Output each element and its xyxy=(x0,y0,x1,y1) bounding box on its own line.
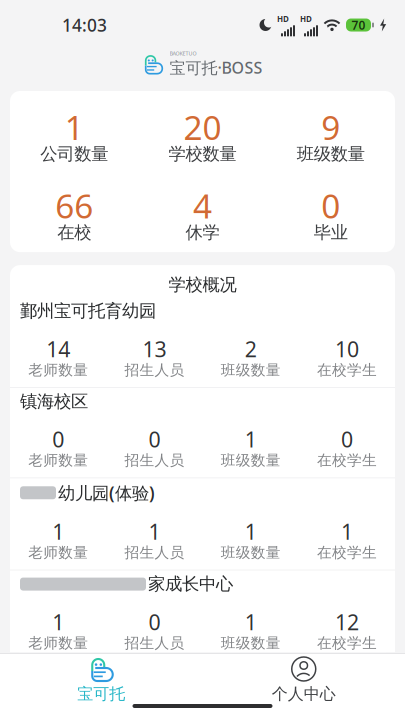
staticText: 宝可托 xyxy=(77,684,125,704)
staticText: 13 xyxy=(142,335,166,363)
staticText: 个人中心 xyxy=(272,684,336,704)
staticText: 班级数量 xyxy=(221,634,281,652)
staticText: 家成长中心 xyxy=(148,573,233,595)
button[interactable]: 镇海校区 xyxy=(10,388,395,478)
staticText: 1 xyxy=(52,517,64,546)
staticText: HD xyxy=(300,14,312,24)
staticText: 12 xyxy=(335,608,359,636)
staticText: HD xyxy=(277,14,289,24)
button[interactable]: 个人中心 xyxy=(202,656,405,704)
staticText: 1 xyxy=(341,517,353,546)
button[interactable]: 鄞州宝可托育幼园 xyxy=(10,297,395,388)
staticText: 老师数量 xyxy=(28,361,88,379)
staticText: 学校数量 xyxy=(168,143,236,165)
staticText: 2 xyxy=(245,335,257,363)
staticText: 14 xyxy=(46,335,70,363)
staticText: 班级数量 xyxy=(221,451,281,469)
staticText: 1 xyxy=(65,105,84,149)
staticText: 在校学生 xyxy=(317,451,377,469)
staticText: 20 xyxy=(183,105,221,149)
staticText: 在校学生 xyxy=(317,634,377,652)
button[interactable]: 幼儿园(体验) xyxy=(10,478,395,570)
staticText: 10 xyxy=(335,335,359,363)
staticText: BAOKETUO xyxy=(169,50,196,57)
button[interactable]: 宝可托 xyxy=(0,656,202,704)
staticText: 1 xyxy=(245,517,257,546)
staticText: 班级数量 xyxy=(297,143,365,165)
staticText: 0 xyxy=(148,608,160,636)
staticText: 1 xyxy=(148,517,160,546)
staticText: 在校学生 xyxy=(317,361,377,379)
staticText: 1 xyxy=(52,608,64,636)
staticText: 公司数量 xyxy=(40,143,108,165)
staticText: 招生人员 xyxy=(124,634,184,652)
staticText: 在校学生 xyxy=(317,544,377,562)
staticText: 老师数量 xyxy=(28,634,88,652)
staticText: 班级数量 xyxy=(221,361,281,379)
staticText: 招生人员 xyxy=(124,544,184,562)
button[interactable]: 家成长中心 xyxy=(10,570,395,661)
staticText: 66 xyxy=(55,184,93,228)
staticText: 招生人员 xyxy=(124,361,184,379)
staticText: 毕业 xyxy=(314,222,348,243)
staticText: 鄞州宝可托育幼园 xyxy=(20,300,156,322)
staticText: 在校 xyxy=(57,222,91,243)
staticText: 0 xyxy=(321,184,340,228)
staticText: 0 xyxy=(52,425,64,453)
staticText: 1 xyxy=(245,608,257,636)
staticText: 学校概况 xyxy=(168,274,236,295)
staticText: 幼儿园(体验) xyxy=(58,481,155,504)
staticText: 老师数量 xyxy=(28,451,88,469)
staticText: 0 xyxy=(341,425,353,453)
staticText: 70 xyxy=(351,17,365,33)
staticText: 老师数量 xyxy=(28,544,88,562)
staticText: 招生人员 xyxy=(124,451,184,469)
staticText: 休学 xyxy=(185,222,219,243)
staticText: 9 xyxy=(321,105,340,149)
staticText: 镇海校区 xyxy=(20,391,88,412)
staticText: 0 xyxy=(148,425,160,453)
staticText: 班级数量 xyxy=(221,544,281,562)
staticText: 4 xyxy=(193,184,212,228)
staticText: 1 xyxy=(245,425,257,453)
staticText: 14:03 xyxy=(62,13,107,36)
staticText: 宝可托·BOSS xyxy=(169,57,262,78)
